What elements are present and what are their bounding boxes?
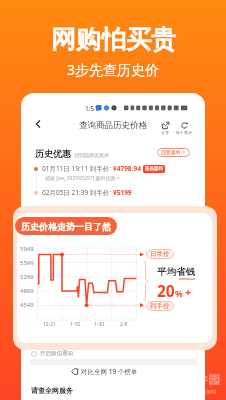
staticText: 1-30 bbox=[94, 321, 105, 328]
staticText: 历史价格走势一目了然 bbox=[21, 221, 111, 232]
staticText: 分享 bbox=[161, 130, 169, 135]
staticText: 我要爆料 > bbox=[161, 149, 186, 156]
staticText: 到手价 bbox=[150, 302, 170, 310]
button[interactable]: 换个商品 bbox=[176, 122, 192, 135]
staticText: 12-21 bbox=[43, 321, 57, 328]
button[interactable]: 分享 bbox=[161, 122, 169, 135]
staticText: 平均省钱 bbox=[157, 266, 195, 278]
staticText: ¥4798.94 bbox=[113, 164, 141, 173]
staticText: 对比全网 19 个榜单 bbox=[81, 367, 138, 376]
staticText: 日常价 bbox=[150, 250, 170, 258]
staticText: 查询商品历史价格 bbox=[79, 120, 147, 131]
staticText: 最低爆料 bbox=[145, 166, 163, 172]
staticText: 01月11日 19:11 到手价: bbox=[42, 164, 113, 173]
staticText: 找到隐藏优惠券 bbox=[74, 152, 109, 158]
staticText: 5599 bbox=[20, 259, 34, 267]
staticText: 02月05日 21:39 到手价: bbox=[42, 188, 113, 197]
staticText: 换个商品 bbox=[176, 130, 192, 135]
button[interactable]: 感谢 [wx_352593257] 爆料优惠 > bbox=[45, 175, 120, 182]
staticText: 5949 bbox=[20, 245, 34, 253]
button[interactable]: 我要爆料 > bbox=[161, 149, 186, 156]
staticText: 1-10 bbox=[70, 321, 81, 328]
staticText: ¥5199 bbox=[113, 188, 132, 197]
staticText: 4899 bbox=[20, 287, 34, 295]
staticText: 3步先查历史价 bbox=[67, 60, 160, 79]
button[interactable]: 02月05日 21:39 到手价: bbox=[42, 188, 132, 197]
staticText: 2-9 bbox=[120, 321, 128, 328]
staticText: 1:51 bbox=[85, 104, 98, 113]
staticText: 感谢 [wx_352593257] 爆料优惠 > bbox=[45, 175, 120, 182]
staticText: 开启微信通知 bbox=[40, 350, 73, 357]
staticText: g.com bbox=[196, 387, 217, 397]
staticText: 历史优惠 bbox=[35, 148, 71, 159]
staticText: 网购怕买贵 bbox=[51, 24, 176, 55]
staticText: + bbox=[185, 284, 192, 299]
staticText: % bbox=[175, 288, 183, 300]
button[interactable]: Back bbox=[30, 116, 46, 132]
staticText: 5249 bbox=[20, 273, 34, 281]
staticText: 请查全网服务 bbox=[31, 386, 73, 395]
staticText: 4549 bbox=[20, 301, 34, 309]
button[interactable]: 对比全网 19 个榜单 bbox=[71, 367, 138, 376]
button[interactable]: 01月11日 19:11 到手价: bbox=[42, 164, 165, 173]
staticText: 20 bbox=[157, 280, 175, 301]
staticText: 件园 bbox=[196, 372, 220, 387]
